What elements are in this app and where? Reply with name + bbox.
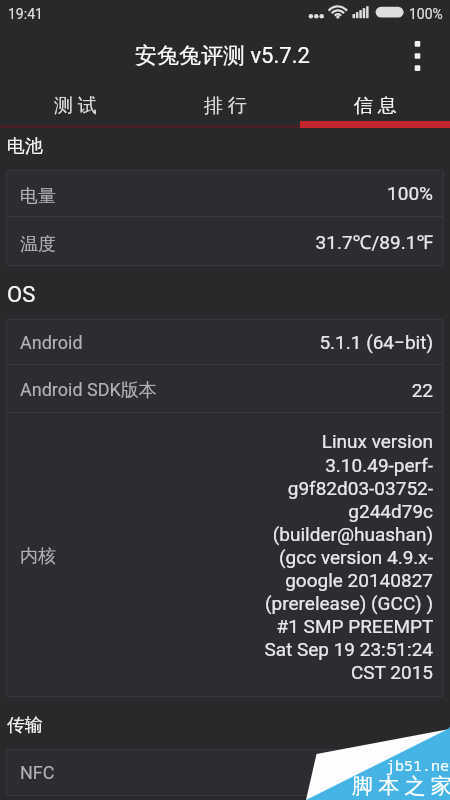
staticText: 传输 [7, 714, 43, 737]
staticText: 电量 [20, 185, 56, 208]
staticText: 安兔兔评测 v5.7.2 [135, 42, 310, 70]
staticText: 电池 [7, 135, 43, 158]
staticText: Android SDK版本 [20, 379, 157, 402]
button[interactable]: More options [384, 28, 450, 84]
button[interactable]: Android [6, 319, 444, 364]
staticText: 31.7℃/89.1℉ [315, 229, 433, 255]
button[interactable]: NFC [6, 749, 444, 796]
staticText: Android [20, 332, 83, 353]
staticText: Linux version 3.10.49-perf-g9f82d03-0375… [257, 430, 433, 683]
staticText: 100% [387, 182, 433, 204]
staticText: 19:41 [8, 6, 43, 22]
staticText: 22 [411, 379, 433, 401]
staticText: OS [7, 282, 36, 308]
button[interactable]: 温度 [6, 217, 444, 266]
staticText: 5.1.1 (64−bit) [319, 331, 433, 353]
staticText: 100% [409, 6, 443, 22]
button[interactable]: 信 息 [300, 84, 450, 128]
staticText: jb51.net [386, 755, 450, 775]
button[interactable]: 电量 [6, 170, 444, 216]
staticText: 测 试 [54, 94, 97, 118]
button[interactable]: Android SDK版本 [6, 365, 444, 412]
staticText: 排 行 [204, 94, 247, 118]
button[interactable]: 内核 [6, 413, 444, 697]
staticText: 脚 本 之 家 [352, 773, 450, 799]
staticText: 信 息 [354, 94, 397, 118]
button[interactable]: 排 行 [150, 84, 300, 128]
staticText: 温度 [20, 233, 56, 256]
staticText: 内核 [20, 545, 56, 568]
staticText: NFC [20, 762, 55, 783]
button[interactable]: 测 试 [0, 84, 150, 128]
